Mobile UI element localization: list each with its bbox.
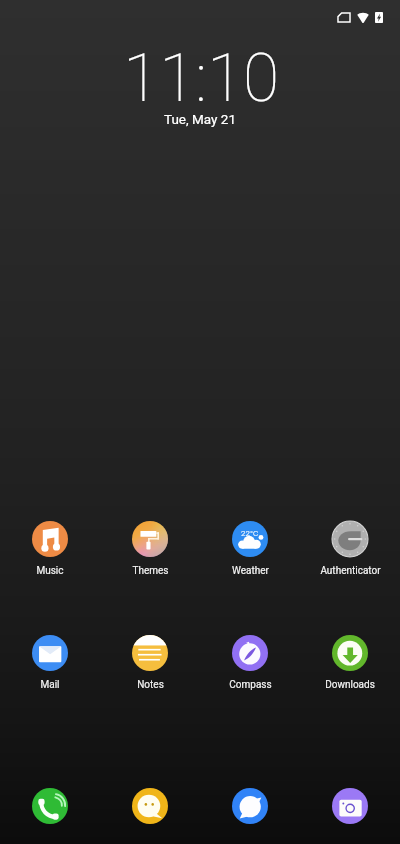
staticText: Notes xyxy=(137,679,164,691)
button[interactable]: Notes xyxy=(100,635,200,691)
button[interactable]: Messages xyxy=(100,788,200,824)
button[interactable]: Downloads xyxy=(300,635,400,691)
staticText: Mail xyxy=(40,679,60,691)
staticText: Compass xyxy=(229,679,272,691)
button[interactable]: Compass xyxy=(200,635,300,691)
staticText: Weather xyxy=(232,565,269,577)
button[interactable]: Themes xyxy=(100,521,200,577)
button[interactable]: Chat xyxy=(200,788,300,824)
staticText: Authenticator xyxy=(320,565,381,577)
staticText: Themes xyxy=(132,565,169,577)
button[interactable]: Phone xyxy=(0,788,100,824)
button[interactable]: Mail xyxy=(0,635,100,691)
button[interactable]: Camera xyxy=(300,788,400,824)
staticText: 22°C xyxy=(241,529,259,538)
staticText: Music xyxy=(36,565,64,577)
staticText: Downloads xyxy=(325,679,375,691)
staticText: Tue, May 21 xyxy=(164,111,236,127)
button[interactable]: 22°C xyxy=(200,521,300,577)
staticText: 11:10 xyxy=(123,40,280,117)
button[interactable]: Music xyxy=(0,521,100,577)
button[interactable]: Authenticator xyxy=(300,521,400,577)
